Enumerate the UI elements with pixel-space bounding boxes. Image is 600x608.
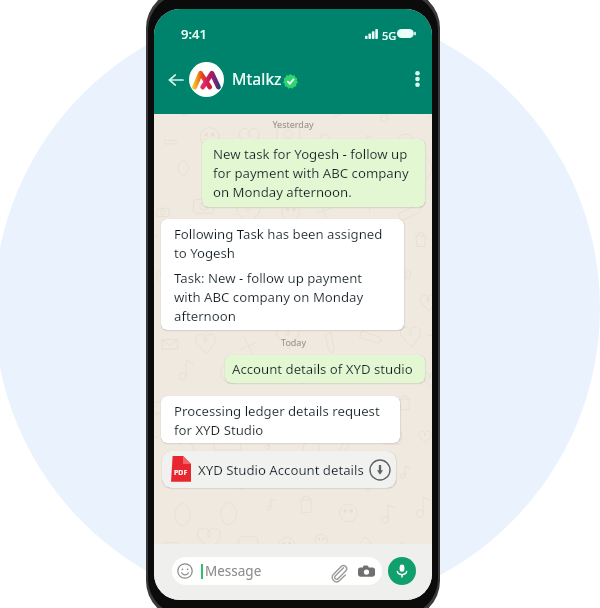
staticText: PDF bbox=[174, 468, 188, 478]
staticText: Account details of XYD studio bbox=[232, 360, 413, 378]
staticText: Following Task has been assigned to Yoge… bbox=[174, 225, 390, 261]
staticText: Task: New - follow up payment with ABC c… bbox=[174, 269, 390, 324]
staticText: Processing ledger details request for XY… bbox=[174, 402, 392, 438]
button[interactable]: Following Task has been assigned to Yoge… bbox=[161, 219, 404, 330]
staticText: New task for Yogesh - follow up for paym… bbox=[213, 145, 416, 200]
button[interactable]: Download bbox=[368, 458, 391, 481]
button[interactable]: PDF bbox=[162, 451, 396, 488]
staticText: XYD Studio Account details bbox=[198, 461, 364, 479]
staticText: Message bbox=[205, 562, 262, 580]
button[interactable]: New task for Yogesh - follow up for paym… bbox=[202, 139, 425, 207]
button[interactable]: Voice message bbox=[388, 557, 416, 585]
button[interactable]: Account details of XYD studio bbox=[225, 355, 425, 383]
button[interactable]: Attach bbox=[327, 560, 349, 582]
staticText: 9:41 bbox=[181, 25, 207, 43]
button[interactable]: Back bbox=[162, 66, 190, 94]
button[interactable]: Mtalkz bbox=[232, 68, 282, 90]
button[interactable]: More options bbox=[404, 66, 430, 92]
button[interactable]: Message bbox=[172, 557, 382, 585]
button[interactable]: Processing ledger details request for XY… bbox=[161, 396, 400, 443]
button[interactable]: Camera bbox=[355, 560, 377, 582]
staticText: Mtalkz bbox=[232, 68, 282, 90]
staticText: 5G bbox=[382, 28, 397, 43]
staticText: Today bbox=[281, 336, 306, 348]
staticText: Yesterday bbox=[272, 118, 314, 130]
